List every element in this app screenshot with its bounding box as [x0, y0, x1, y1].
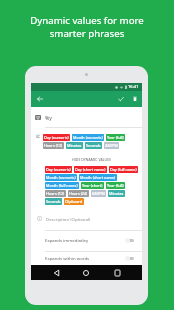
button[interactable]: Expands within words — [45, 252, 134, 264]
button[interactable]: Month (short name) — [79, 174, 117, 181]
button[interactable]: Year (full) — [106, 134, 125, 141]
staticText: Year (short) — [82, 183, 103, 188]
button[interactable]: Delete — [128, 91, 141, 107]
staticText: Expands within words — [45, 255, 90, 261]
staticText: Month (numeric) — [73, 135, 103, 140]
staticText: Hours (12) — [46, 191, 65, 196]
staticText: Month (numeric) — [46, 175, 76, 180]
staticText: Hours (12) — [44, 143, 63, 148]
button[interactable]: Month (full name) — [45, 182, 79, 189]
button[interactable]: Month (numeric) — [72, 134, 104, 141]
staticText: Description (Optional) — [46, 216, 91, 222]
staticText: Day (short name) — [75, 167, 106, 172]
staticText: Dynamic values for more smarter phrases — [30, 14, 144, 40]
button[interactable]: AM/PM — [91, 190, 106, 197]
staticText: AM/PM — [105, 143, 118, 148]
button[interactable]: AM/PM — [104, 142, 119, 149]
staticText: Hours (24) — [69, 191, 88, 196]
staticText: Month (short name) — [80, 175, 116, 180]
staticText: Day (numeric) — [44, 135, 69, 140]
staticText: Day (full name) — [110, 167, 137, 172]
staticText: Day (numeric) — [46, 167, 71, 172]
button[interactable]: Month (numeric) — [45, 174, 77, 181]
staticText: Minutes — [67, 143, 82, 148]
staticText: %y — [45, 114, 52, 121]
button[interactable]: Clipboard — [64, 198, 84, 205]
staticText: 16:41 — [128, 84, 139, 90]
button[interactable]: Day (numeric) — [45, 166, 72, 173]
button[interactable]: Navigate up — [31, 91, 49, 107]
staticText: Minutes — [109, 191, 124, 196]
button[interactable]: Seconds — [85, 142, 102, 149]
button[interactable]: Day (numeric) — [43, 134, 70, 141]
button[interactable]: Hours (24) — [68, 190, 89, 197]
button[interactable]: Day (short name) — [74, 166, 107, 173]
button[interactable]: Save — [113, 91, 128, 107]
button[interactable]: Year (short) — [81, 182, 104, 189]
staticText: Month (full name) — [46, 183, 78, 188]
button[interactable]: Year (full) — [106, 182, 125, 189]
button[interactable]: Hours (12) — [43, 142, 64, 149]
staticText: HIDE DYNAMIC VALUES — [72, 157, 112, 162]
staticText: Expands immediatley — [45, 237, 89, 243]
button[interactable]: HIDE DYNAMIC VALUES — [41, 154, 142, 164]
staticText: AM/PM — [92, 191, 105, 196]
button[interactable]: Seconds — [45, 198, 62, 205]
button[interactable]: Minutes — [66, 142, 83, 149]
button[interactable]: Back — [51, 265, 61, 280]
button[interactable]: Minutes — [108, 190, 125, 197]
button[interactable]: Day (full name) — [109, 166, 138, 173]
staticText: Seconds — [86, 143, 101, 148]
staticText: Clipboard — [65, 199, 83, 204]
staticText: Seconds — [46, 199, 61, 204]
button[interactable]: Recents — [112, 265, 122, 280]
staticText: Year (full) — [107, 135, 124, 140]
staticText: Year (full) — [107, 183, 124, 188]
button[interactable]: Expands immediatley — [45, 234, 134, 246]
button[interactable]: Home — [81, 265, 91, 280]
button[interactable]: Hours (12) — [45, 190, 66, 197]
button[interactable]: Description (Optional) — [31, 212, 142, 225]
button[interactable]: %y — [31, 109, 142, 125]
